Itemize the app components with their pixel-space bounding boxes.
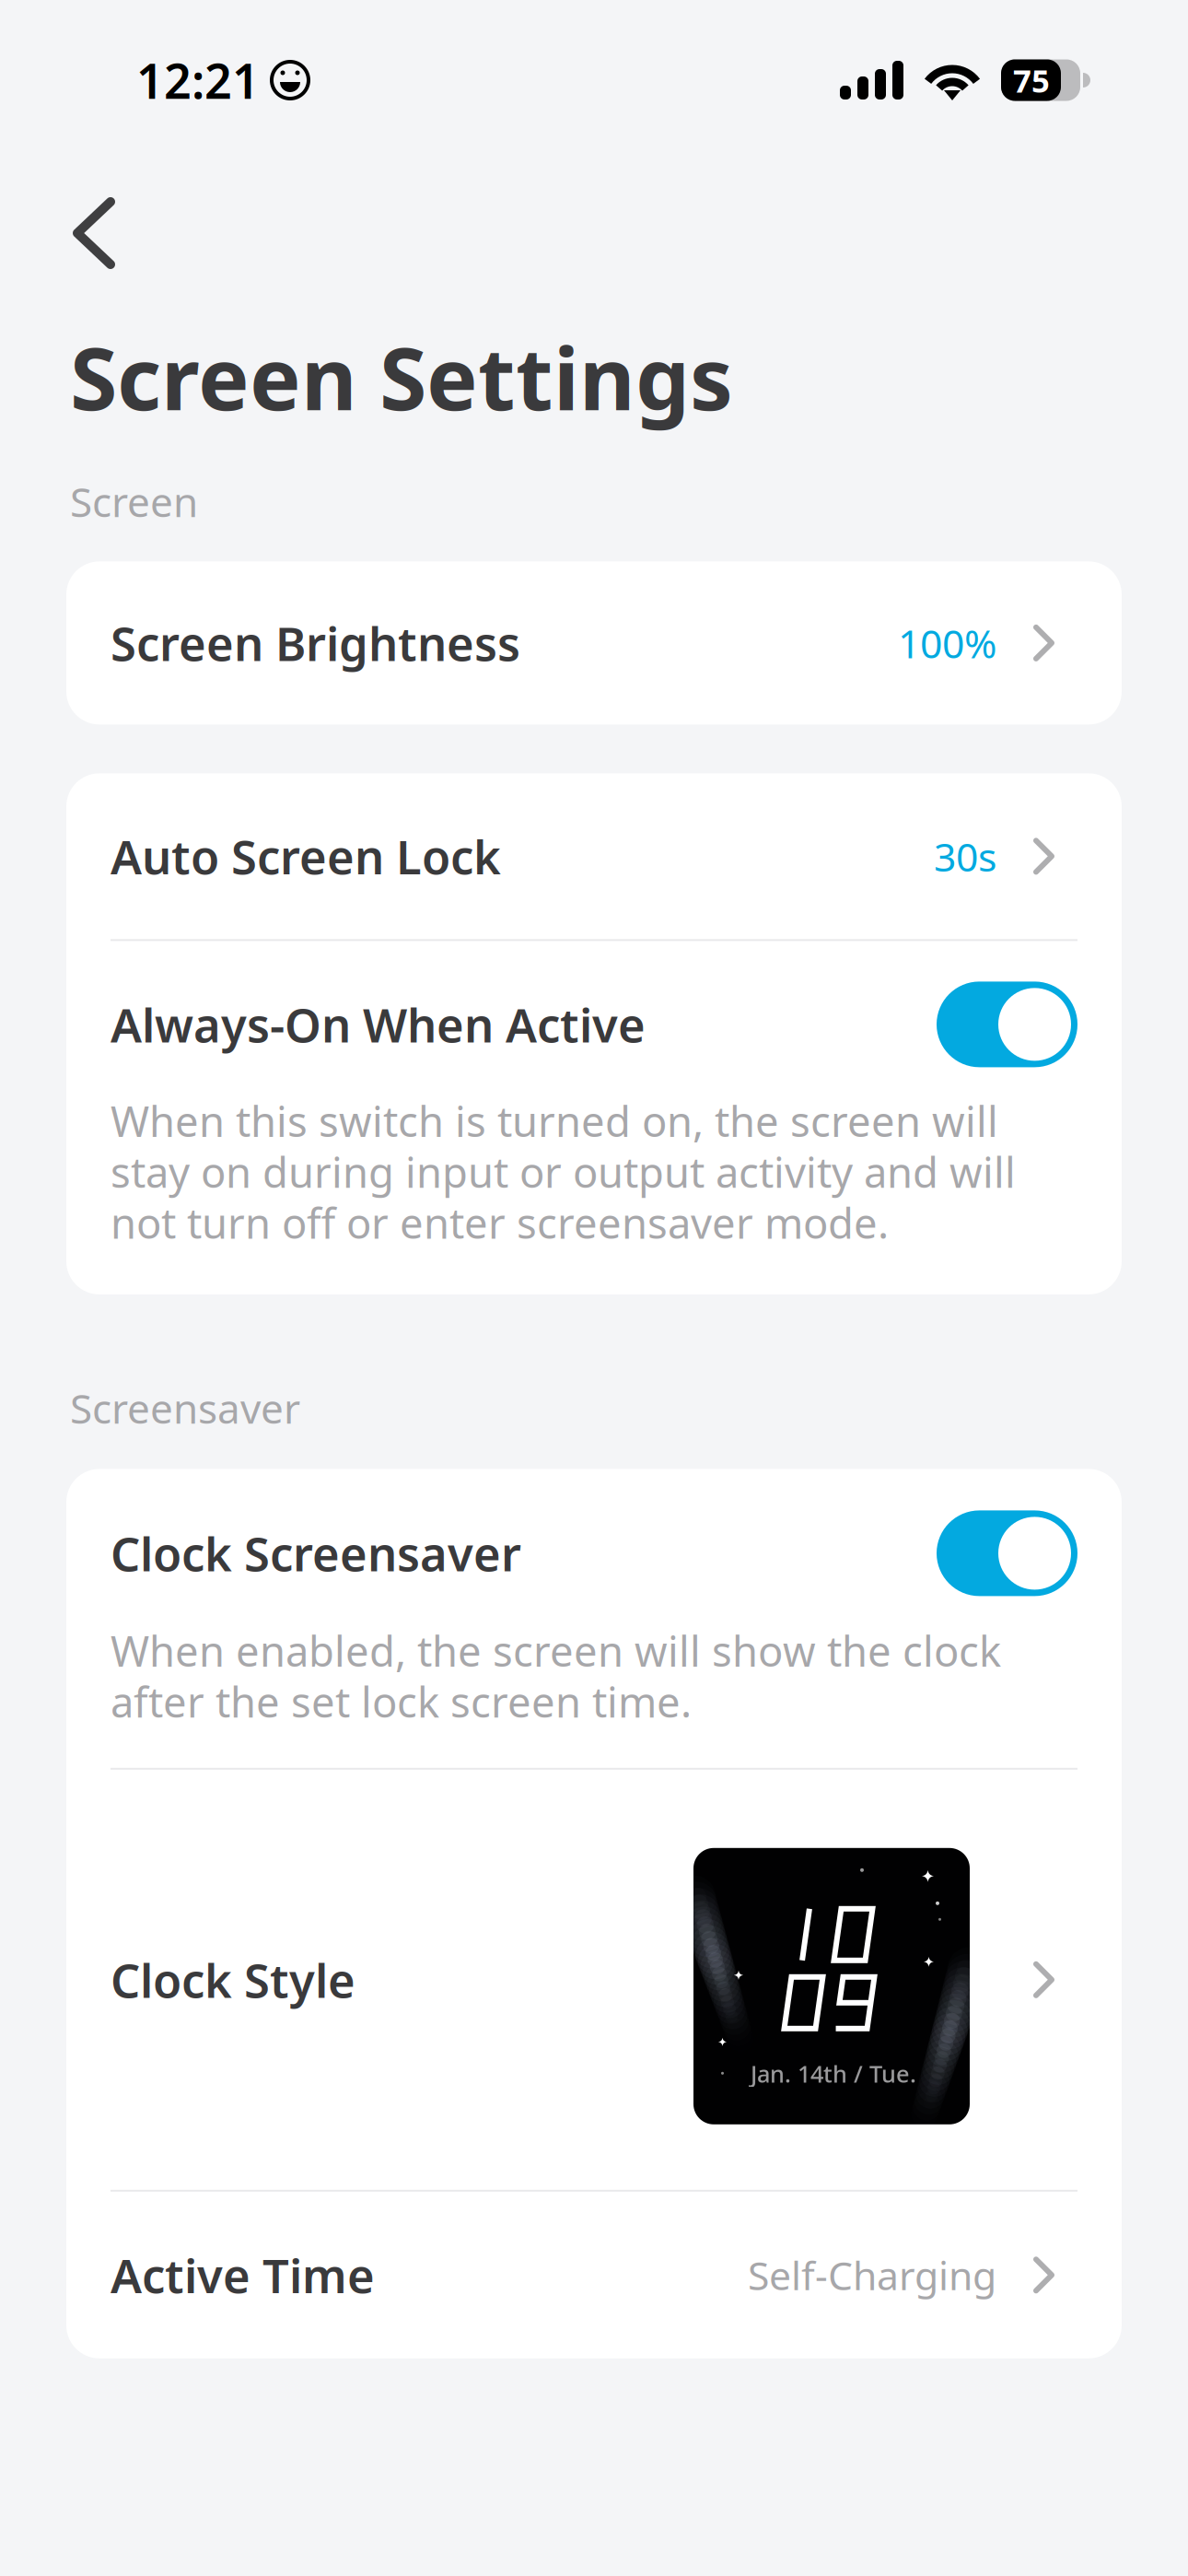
staticText: Screen Settings [70,320,733,434]
staticText: Always-On When Active [111,993,646,1055]
staticText: Self-Charging [748,2249,996,2301]
staticText: 100% [898,617,996,669]
button[interactable]: Auto Screen Lock [66,773,1122,939]
staticText: Screensaver [70,1381,300,1435]
button[interactable]: Clock Screensaver [937,1510,1077,1596]
button[interactable]: Screen Brightness [66,561,1122,725]
staticText: When this switch is turned on, the scree… [111,1093,1016,1250]
staticText: Clock Style [111,1949,355,2011]
staticText: Clock Screensaver [111,1522,521,1584]
staticText: When enabled, the screen will show the c… [111,1623,1001,1729]
staticText: Screen Brightness [111,612,520,674]
button[interactable]: Always-On When Active [937,982,1077,1067]
staticText: Auto Screen Lock [111,825,501,887]
staticText: Jan. 14th / Tue. [751,2058,916,2089]
button[interactable]: Active Time [66,2192,1122,2358]
staticText: 30s [934,830,996,882]
button[interactable]: Clock Style [66,1770,1122,2190]
button[interactable]: Back [0,175,153,291]
staticText: 75 [1013,59,1050,101]
staticText: 12:21 [136,48,260,112]
staticText: Active Time [111,2244,375,2306]
staticText: Screen [70,474,198,528]
